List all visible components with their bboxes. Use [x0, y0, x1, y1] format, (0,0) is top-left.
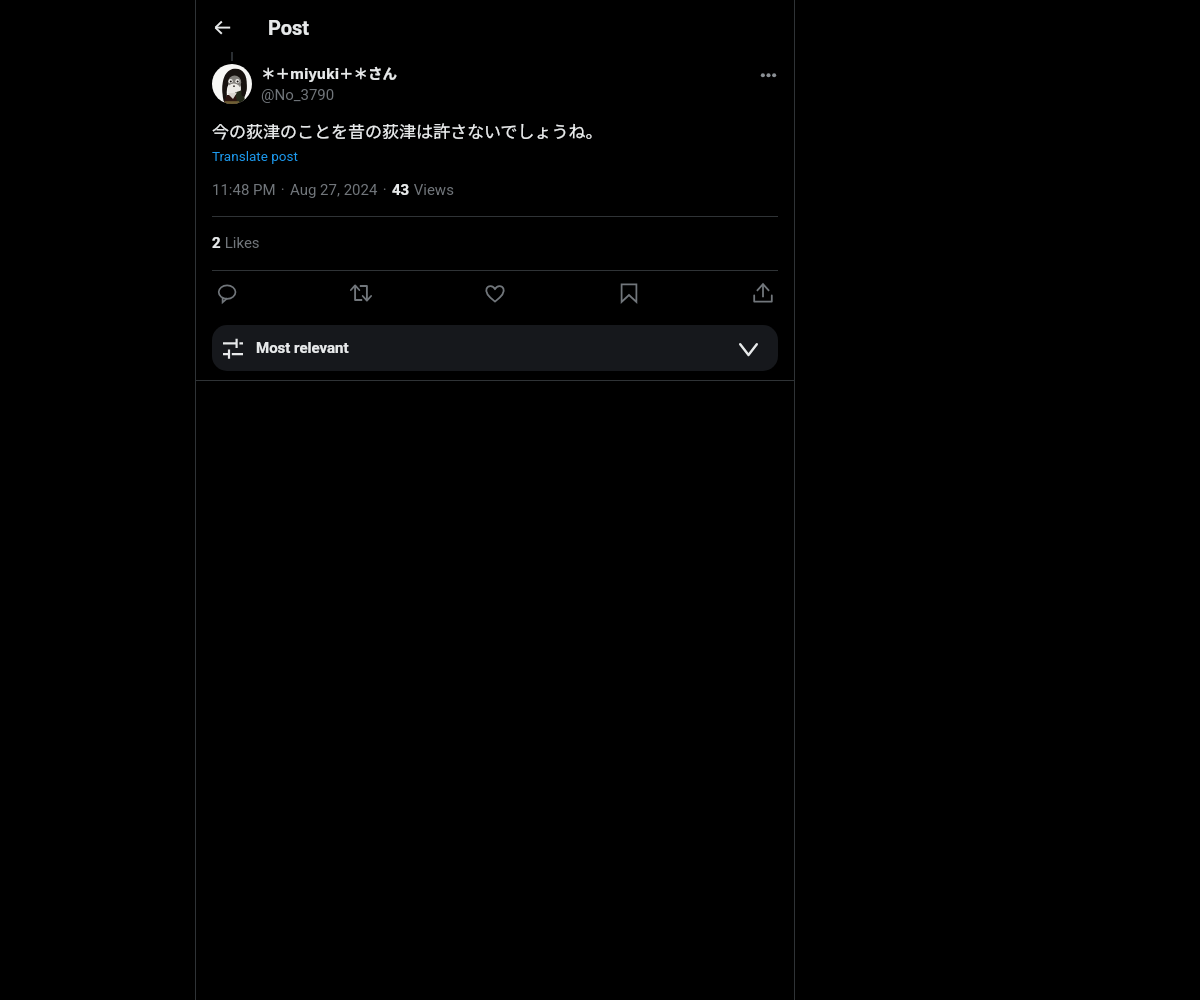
- button[interactable]: @No_3790: [261, 86, 335, 104]
- button[interactable]: Profile picture: [212, 64, 252, 104]
- button[interactable]: Back: [200, 5, 244, 49]
- staticText: 2: [212, 234, 221, 252]
- staticText: Post: [268, 16, 310, 39]
- staticText: ·: [379, 181, 391, 199]
- staticText: Translate post: [212, 148, 298, 164]
- staticText: Aug 27, 2024: [290, 181, 378, 199]
- button[interactable]: Like: [478, 276, 512, 310]
- staticText: Likes: [221, 234, 260, 252]
- staticText: 43: [392, 181, 410, 199]
- staticText: Views: [410, 181, 454, 199]
- button[interactable]: Bookmark: [612, 276, 646, 310]
- button[interactable]: Translate post: [212, 148, 298, 164]
- staticText: @No_3790: [261, 86, 335, 104]
- button[interactable]: Repost: [344, 276, 378, 310]
- staticText: 今の荻津のことを昔の荻津は許さないでしょうね。: [212, 118, 603, 143]
- staticText: 11:48 PM: [212, 181, 276, 199]
- button[interactable]: Post: [268, 16, 310, 39]
- button[interactable]: 2: [212, 234, 260, 252]
- button[interactable]: ＊＋miyuki＋＊さん: [261, 62, 398, 83]
- button[interactable]: Reply: [210, 276, 244, 310]
- staticText: ＊＋miyuki＋＊さん: [261, 62, 398, 83]
- staticText: ·: [277, 181, 289, 199]
- staticText: Most relevant: [256, 339, 349, 357]
- button[interactable]: Most relevant: [212, 325, 778, 371]
- button[interactable]: Share: [746, 276, 780, 310]
- button[interactable]: More options: [751, 58, 786, 93]
